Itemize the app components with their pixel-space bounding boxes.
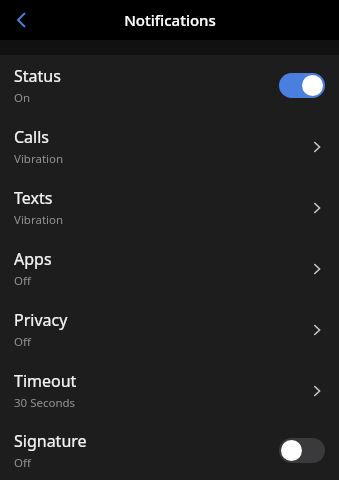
button[interactable]: Privacy (0, 299, 339, 360)
staticText: Signature (14, 430, 87, 452)
button[interactable]: Back (0, 0, 44, 40)
staticText: Status (14, 65, 61, 87)
button[interactable]: Toggle on (279, 73, 325, 98)
staticText: Timeout (14, 370, 77, 392)
staticText: Apps (14, 248, 52, 270)
staticText: Notifications (124, 10, 216, 30)
button[interactable]: Texts (0, 177, 339, 238)
staticText: Vibration (14, 151, 64, 167)
button[interactable]: Toggle off (279, 438, 325, 463)
button[interactable]: Status (0, 55, 339, 116)
button[interactable]: Apps (0, 238, 339, 299)
staticText: Off (14, 334, 31, 350)
staticText: On (14, 90, 31, 106)
button[interactable]: Timeout (0, 360, 339, 421)
button[interactable]: Calls (0, 116, 339, 177)
button[interactable]: Signature (0, 421, 339, 480)
staticText: Off (14, 455, 31, 471)
staticText: Off (14, 273, 31, 289)
staticText: 30 Seconds (14, 395, 76, 411)
staticText: Vibration (14, 212, 64, 228)
staticText: Privacy (14, 309, 68, 331)
staticText: Texts (14, 187, 53, 209)
staticText: Calls (14, 126, 50, 148)
